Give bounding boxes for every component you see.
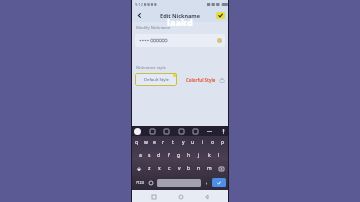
button[interactable]: Backspace xyxy=(214,162,228,175)
staticText: p xyxy=(221,139,225,146)
staticText: ?123 xyxy=(136,180,144,185)
button[interactable]: c xyxy=(164,162,174,175)
button[interactable]: Default Style xyxy=(135,73,177,86)
staticText: y xyxy=(182,139,185,146)
staticText: z xyxy=(148,165,151,172)
button[interactable]: m xyxy=(204,162,214,175)
staticText: l xyxy=(218,152,220,159)
staticText: i xyxy=(202,139,204,146)
staticText: x xyxy=(158,165,161,172)
button[interactable]: Toolbar action xyxy=(178,128,184,134)
button[interactable]: x xyxy=(154,162,164,175)
staticText: Modify Nickname xyxy=(136,25,171,31)
button[interactable]: Recents xyxy=(149,192,158,201)
button[interactable]: Colorful Style xyxy=(184,75,218,85)
staticText: u xyxy=(191,139,195,146)
button[interactable]: b xyxy=(184,162,194,175)
button[interactable]: i xyxy=(198,136,208,149)
staticText: v xyxy=(178,165,181,172)
button[interactable]: r xyxy=(159,136,168,149)
button[interactable]: t xyxy=(168,136,178,149)
button[interactable]: Toolbar action xyxy=(149,128,155,134)
button[interactable]: o xyxy=(208,136,218,149)
button[interactable]: Toolbar action xyxy=(192,128,198,134)
button[interactable]: ?123 xyxy=(133,175,146,190)
staticText: q xyxy=(135,139,139,146)
button[interactable]: Clear text xyxy=(217,38,222,43)
button[interactable]: Keyboard settings xyxy=(134,128,141,135)
button[interactable]: Emoji xyxy=(146,175,156,190)
button[interactable]: j xyxy=(194,149,204,162)
staticText: o xyxy=(211,139,215,146)
staticText: s xyxy=(148,152,151,159)
button[interactable]: f xyxy=(164,149,174,162)
staticText: laakd xyxy=(167,16,193,28)
staticText: r xyxy=(162,139,165,146)
button[interactable]: q xyxy=(132,136,141,149)
staticText: w xyxy=(144,139,148,146)
button[interactable]: d xyxy=(154,149,164,162)
staticText: m xyxy=(207,165,212,172)
button[interactable]: h xyxy=(184,149,194,162)
button[interactable]: Enter xyxy=(212,178,226,187)
button[interactable]: g xyxy=(174,149,184,162)
staticText: d xyxy=(157,152,161,159)
button[interactable]: Space xyxy=(157,179,201,187)
staticText: c xyxy=(168,165,171,172)
button[interactable]: a xyxy=(136,149,145,162)
button[interactable]: Clear text xyxy=(135,34,225,47)
staticText: Edit Nickname xyxy=(160,12,200,19)
staticText: h xyxy=(187,152,191,159)
button[interactable]: w xyxy=(141,136,150,149)
staticText: Nickname style xyxy=(136,65,166,71)
button[interactable]: u xyxy=(188,136,198,149)
button[interactable]: s xyxy=(145,149,154,162)
button[interactable]: Shift xyxy=(132,162,145,175)
button[interactable]: Back xyxy=(202,192,211,201)
button[interactable]: Locked xyxy=(218,76,225,83)
button[interactable]: p xyxy=(218,136,228,149)
button[interactable]: l xyxy=(214,149,224,162)
staticText: b xyxy=(187,165,191,172)
button[interactable]: v xyxy=(174,162,184,175)
button[interactable]: y xyxy=(178,136,188,149)
staticText: f xyxy=(168,152,170,159)
staticText: g xyxy=(177,152,181,159)
staticText: e xyxy=(153,139,156,146)
button[interactable]: More options xyxy=(206,128,212,134)
button[interactable]: Save nickname xyxy=(216,12,225,19)
button[interactable]: Home xyxy=(176,192,185,201)
button[interactable]: Comma xyxy=(202,175,211,190)
button[interactable]: k xyxy=(204,149,214,162)
staticText: j xyxy=(198,152,200,159)
staticText: n xyxy=(197,165,201,172)
button[interactable]: e xyxy=(150,136,159,149)
staticText: t xyxy=(172,139,174,146)
staticText: , xyxy=(206,179,208,186)
button[interactable]: n xyxy=(194,162,204,175)
staticText: k xyxy=(208,152,211,159)
staticText: Default Style xyxy=(144,77,169,83)
staticText: a xyxy=(139,152,142,159)
button[interactable]: Back xyxy=(134,10,145,21)
button[interactable]: Toolbar action xyxy=(163,128,169,134)
button[interactable]: Voice input xyxy=(220,128,226,134)
staticText: 9:12 xyxy=(135,2,143,7)
button[interactable]: z xyxy=(145,162,154,175)
